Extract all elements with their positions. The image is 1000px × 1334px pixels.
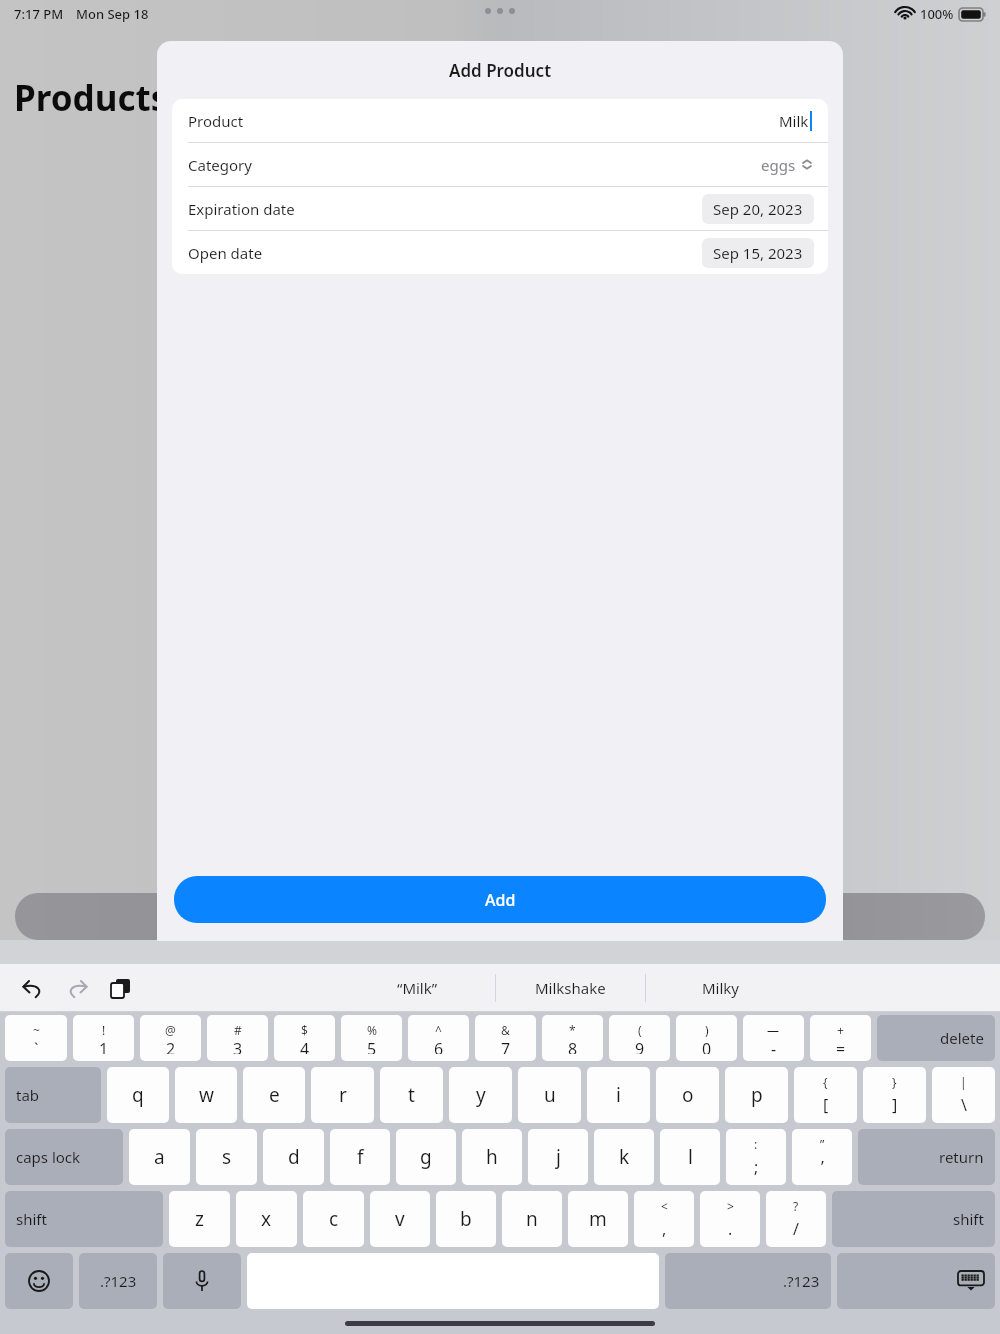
- staticText: shift: [953, 1209, 984, 1229]
- button[interactable]: c: [303, 1191, 364, 1247]
- staticText: “Milk”: [397, 978, 438, 998]
- staticText: Milk: [779, 111, 809, 131]
- button[interactable]: ): [676, 1015, 737, 1061]
- button[interactable]: m: [568, 1191, 628, 1247]
- staticText: |: [960, 1074, 967, 1090]
- button[interactable]: s: [196, 1129, 257, 1185]
- staticText: f: [357, 1144, 364, 1170]
- staticText: 7:17 PM: [14, 5, 64, 23]
- staticText: 2: [166, 1038, 176, 1054]
- button[interactable]: l: [660, 1129, 720, 1185]
- staticText: tab: [16, 1085, 40, 1105]
- button[interactable]: x: [236, 1191, 297, 1247]
- staticText: Milky: [702, 978, 740, 998]
- staticText: 6: [434, 1038, 444, 1054]
- button[interactable]: p: [725, 1067, 788, 1123]
- staticText: {: [823, 1074, 828, 1090]
- button[interactable]: {: [794, 1067, 857, 1123]
- button[interactable]: e: [243, 1067, 305, 1123]
- button[interactable]: Add: [174, 876, 826, 923]
- staticText: o: [682, 1082, 694, 1108]
- button[interactable]: return: [858, 1129, 995, 1185]
- staticText: caps lock: [16, 1147, 81, 1167]
- button[interactable]: a: [129, 1129, 190, 1185]
- button[interactable]: Hide keyboard: [837, 1253, 995, 1309]
- button[interactable]: Milky: [646, 965, 795, 1011]
- button[interactable]: #: [207, 1015, 268, 1061]
- button[interactable]: “Milk”: [340, 965, 495, 1011]
- button[interactable]: z: [169, 1191, 230, 1247]
- button[interactable]: w: [175, 1067, 237, 1123]
- button[interactable]: Product: [172, 99, 828, 142]
- staticText: Sep 15, 2023: [713, 243, 803, 263]
- staticText: Category: [188, 155, 252, 175]
- button[interactable]: u: [518, 1067, 581, 1123]
- button[interactable]: shift: [832, 1191, 995, 1247]
- staticText: g: [420, 1144, 432, 1170]
- button[interactable]: delete: [877, 1015, 995, 1061]
- button[interactable]: .?123: [79, 1253, 157, 1309]
- button[interactable]: d: [263, 1129, 324, 1185]
- button[interactable]: q: [107, 1067, 169, 1123]
- button[interactable]: i: [587, 1067, 650, 1123]
- button[interactable]: Milkshake: [496, 965, 645, 1011]
- button[interactable]: <: [634, 1191, 694, 1247]
- button[interactable]: n: [502, 1191, 562, 1247]
- staticText: r: [339, 1082, 347, 1108]
- button[interactable]: y: [449, 1067, 512, 1123]
- button[interactable]: Category: [172, 143, 828, 186]
- button[interactable]: caps lock: [5, 1129, 123, 1185]
- button[interactable]: ~: [5, 1015, 67, 1061]
- button[interactable]: %: [341, 1015, 402, 1061]
- button[interactable]: j: [528, 1129, 588, 1185]
- button[interactable]: f: [330, 1129, 390, 1185]
- button[interactable]: Expiration date: [172, 187, 828, 230]
- staticText: m: [589, 1206, 607, 1232]
- button[interactable]: —: [743, 1015, 804, 1061]
- button[interactable]: g: [396, 1129, 456, 1185]
- button[interactable]: b: [436, 1191, 496, 1247]
- staticText: ~: [33, 1022, 40, 1038]
- button[interactable]: .?123: [665, 1253, 831, 1309]
- button[interactable]: t: [380, 1067, 443, 1123]
- button[interactable]: Redo: [62, 973, 92, 1003]
- button[interactable]: *: [542, 1015, 603, 1061]
- staticText: .?123: [100, 1271, 137, 1291]
- button[interactable]: (: [609, 1015, 670, 1061]
- button[interactable]: Open date: [172, 231, 828, 274]
- button[interactable]: $: [274, 1015, 335, 1061]
- button[interactable]: k: [594, 1129, 654, 1185]
- button[interactable]: |: [932, 1067, 995, 1123]
- staticText: Add Product: [449, 59, 552, 82]
- staticText: z: [195, 1206, 204, 1232]
- staticText: v: [395, 1206, 405, 1232]
- button[interactable]: Emoji: [5, 1253, 73, 1309]
- button[interactable]: +: [810, 1015, 871, 1061]
- staticText: 1: [99, 1038, 109, 1054]
- button[interactable]: ”: [792, 1129, 852, 1185]
- button[interactable]: ^: [408, 1015, 469, 1061]
- staticText: 7: [501, 1038, 511, 1054]
- staticText: ”: [820, 1136, 825, 1152]
- button[interactable]: shift: [5, 1191, 163, 1247]
- button[interactable]: &: [475, 1015, 536, 1061]
- button[interactable]: tab: [5, 1067, 101, 1123]
- button[interactable]: Undo: [18, 973, 48, 1003]
- staticText: q: [132, 1082, 144, 1108]
- button[interactable]: :: [726, 1129, 786, 1185]
- staticText: 4: [300, 1038, 310, 1054]
- button[interactable]: @: [140, 1015, 201, 1061]
- button[interactable]: v: [370, 1191, 430, 1247]
- button[interactable]: r: [311, 1067, 374, 1123]
- button[interactable]: o: [656, 1067, 719, 1123]
- button[interactable]: ?: [766, 1191, 826, 1247]
- button[interactable]: h: [462, 1129, 522, 1185]
- button[interactable]: Dictation: [163, 1253, 241, 1309]
- button[interactable]: }: [863, 1067, 926, 1123]
- button[interactable]: Paste: [106, 973, 136, 1003]
- button[interactable]: >: [700, 1191, 760, 1247]
- button[interactable]: !: [73, 1015, 134, 1061]
- staticText: c: [329, 1206, 339, 1232]
- staticText: Sep 20, 2023: [713, 199, 803, 219]
